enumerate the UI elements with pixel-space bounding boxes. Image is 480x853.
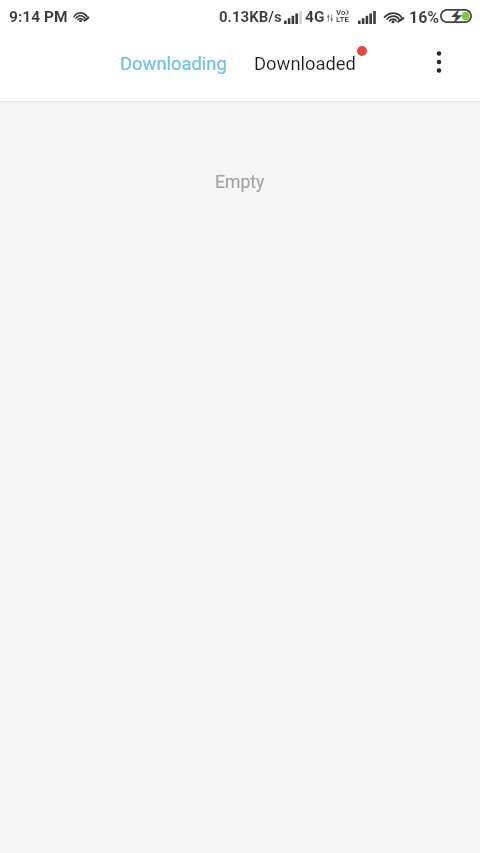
- button[interactable]: More options: [419, 42, 459, 82]
- staticText: Downloading: [120, 53, 227, 75]
- staticText: LTE: [336, 15, 349, 24]
- staticText: Downloaded: [254, 53, 356, 75]
- staticText: 9:14 PM: [9, 8, 68, 26]
- staticText: Empty: [215, 172, 265, 193]
- staticText: Vo: [336, 8, 346, 17]
- staticText: 4G: [305, 8, 325, 26]
- button[interactable]: Downloaded: [246, 40, 364, 88]
- staticText: 16%: [409, 8, 440, 27]
- button[interactable]: Downloading: [112, 40, 235, 88]
- staticText: 0.13KB/s: [219, 8, 282, 26]
